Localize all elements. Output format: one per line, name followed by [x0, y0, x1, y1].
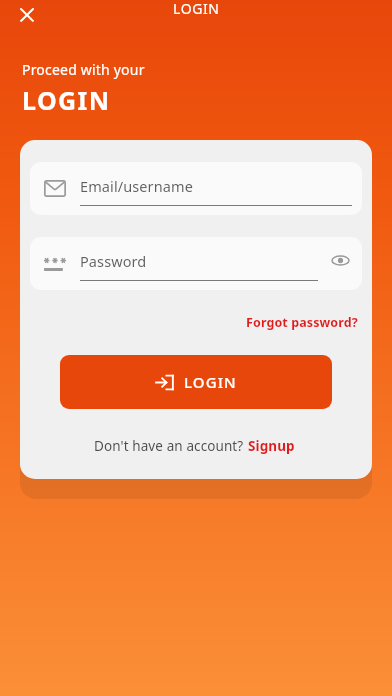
staticText: LOGIN	[184, 372, 237, 392]
staticText: LOGIN	[173, 0, 220, 18]
staticText: Forgot password?	[246, 314, 358, 331]
staticText: LOGIN	[22, 83, 111, 117]
button[interactable]: Password	[30, 237, 362, 290]
button[interactable]: Signup	[244, 435, 299, 457]
button[interactable]: Email/username	[30, 162, 362, 215]
button[interactable]: LOGIN	[60, 355, 332, 409]
button[interactable]: Forgot password?	[242, 312, 362, 333]
button[interactable]: Close	[12, 0, 42, 22]
staticText: Signup	[248, 437, 295, 455]
staticText: Don't have an account?	[94, 437, 244, 455]
staticText: Password	[80, 251, 147, 271]
button[interactable]: Show password	[318, 237, 362, 290]
staticText: Proceed with your	[22, 60, 145, 79]
staticText: Email/username	[80, 176, 193, 196]
